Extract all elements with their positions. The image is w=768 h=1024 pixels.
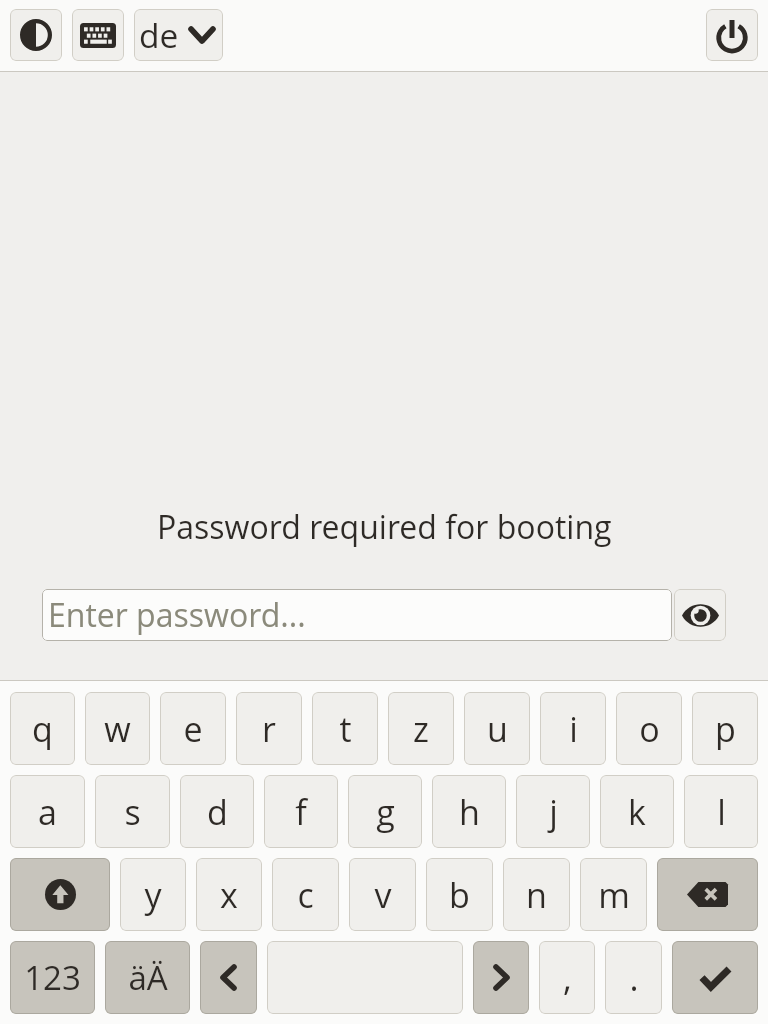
button[interactable]: l — [684, 775, 758, 848]
button[interactable]: de — [134, 9, 223, 61]
button[interactable]: p — [692, 692, 758, 765]
button[interactable]: 123 — [10, 941, 95, 1014]
button[interactable]: k — [600, 775, 674, 848]
staticText: y — [144, 872, 162, 918]
staticText: w — [104, 706, 131, 752]
staticText: u — [487, 706, 508, 752]
button[interactable]: m — [580, 858, 647, 931]
button[interactable]: z — [388, 692, 454, 765]
button[interactable]: b — [426, 858, 493, 931]
button[interactable]: Power — [706, 9, 758, 61]
staticText: h — [459, 789, 480, 835]
button[interactable]: Toggle keyboard — [72, 9, 124, 61]
button[interactable]: t — [312, 692, 378, 765]
button[interactable]: Show password — [674, 589, 726, 641]
staticText: n — [526, 872, 547, 918]
button[interactable]: u — [464, 692, 530, 765]
button[interactable]: r — [236, 692, 302, 765]
button[interactable]: v — [349, 858, 416, 931]
staticText: x — [220, 872, 238, 918]
staticText: äÄ — [128, 955, 168, 1000]
button[interactable]: i — [540, 692, 606, 765]
staticText: a — [38, 789, 57, 835]
button[interactable]: äÄ — [105, 941, 190, 1014]
button[interactable]: d — [180, 775, 254, 848]
staticText: z — [413, 706, 429, 752]
button[interactable]: Backspace — [657, 858, 758, 931]
staticText: . — [629, 955, 639, 1001]
button[interactable]: Space — [267, 941, 463, 1014]
staticText: d — [207, 789, 228, 835]
staticText: i — [569, 706, 578, 752]
button[interactable]: Enter — [672, 941, 758, 1014]
button[interactable]: g — [348, 775, 422, 848]
staticText: f — [295, 789, 307, 835]
staticText: de — [139, 12, 179, 58]
staticText: 123 — [24, 955, 81, 1000]
staticText: b — [449, 872, 470, 918]
button[interactable]: q — [10, 692, 75, 765]
button[interactable]: High contrast — [10, 9, 62, 61]
staticText: t — [339, 706, 352, 752]
staticText: c — [297, 872, 314, 918]
button[interactable]: x — [196, 858, 262, 931]
button[interactable]: Enter password... — [42, 589, 672, 641]
staticText: l — [717, 789, 726, 835]
button[interactable]: Move cursor right — [473, 941, 529, 1014]
button[interactable]: , — [539, 941, 595, 1014]
button[interactable]: f — [264, 775, 338, 848]
button[interactable]: e — [160, 692, 226, 765]
button[interactable]: . — [605, 941, 662, 1014]
staticText: m — [598, 872, 630, 918]
staticText: g — [376, 789, 395, 835]
staticText: j — [549, 789, 558, 835]
staticText: k — [628, 789, 646, 835]
staticText: , — [563, 955, 572, 1001]
staticText: r — [262, 706, 276, 752]
button[interactable]: Move cursor left — [200, 941, 257, 1014]
button[interactable]: h — [432, 775, 506, 848]
button[interactable]: o — [616, 692, 682, 765]
staticText: e — [183, 706, 203, 752]
button[interactable]: w — [85, 692, 150, 765]
staticText: p — [715, 706, 736, 752]
staticText: Enter password... — [48, 593, 306, 637]
button[interactable]: j — [516, 775, 590, 848]
staticText: s — [124, 789, 141, 835]
button[interactable]: n — [503, 858, 570, 931]
staticText: Password required for booting — [157, 505, 612, 549]
staticText: v — [374, 872, 392, 918]
button[interactable]: y — [120, 858, 186, 931]
staticText: o — [639, 706, 660, 752]
button[interactable]: Shift — [10, 858, 110, 931]
button[interactable]: c — [272, 858, 339, 931]
staticText: q — [32, 706, 53, 752]
button[interactable]: s — [95, 775, 170, 848]
button[interactable]: a — [10, 775, 85, 848]
